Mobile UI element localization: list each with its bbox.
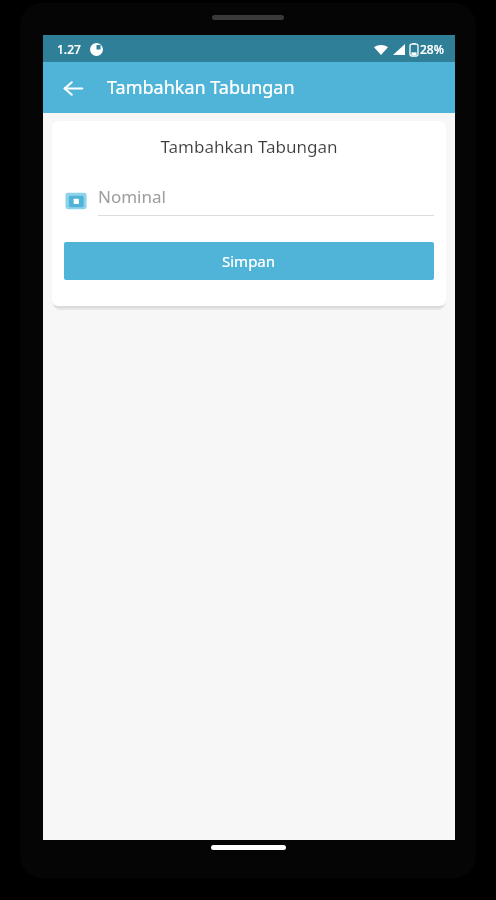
staticText: Nominal bbox=[98, 185, 166, 208]
button[interactable]: Simpan bbox=[64, 242, 434, 280]
staticText: Tambahkan Tabungan bbox=[107, 75, 295, 100]
button[interactable]: Nominal bbox=[64, 185, 434, 216]
staticText: Tambahkan Tabungan bbox=[160, 135, 338, 158]
button[interactable]: Back bbox=[53, 68, 93, 108]
staticText: Simpan bbox=[222, 251, 276, 271]
staticText: 28% bbox=[420, 41, 444, 57]
staticText: 1.27 bbox=[57, 41, 81, 57]
